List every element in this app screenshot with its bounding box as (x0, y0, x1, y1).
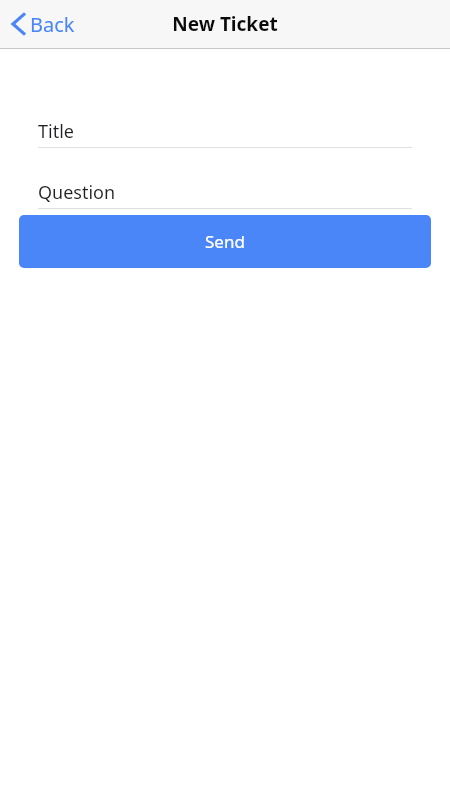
button[interactable]: Send (19, 215, 431, 268)
staticText: Send (205, 230, 245, 253)
button[interactable]: Title (38, 116, 412, 148)
button[interactable]: Question (38, 177, 412, 209)
staticText: Back (30, 11, 75, 38)
staticText: Title (38, 119, 74, 144)
staticText: New Ticket (0, 11, 450, 37)
button[interactable]: Back (0, 0, 87, 48)
staticText: Question (38, 180, 116, 205)
